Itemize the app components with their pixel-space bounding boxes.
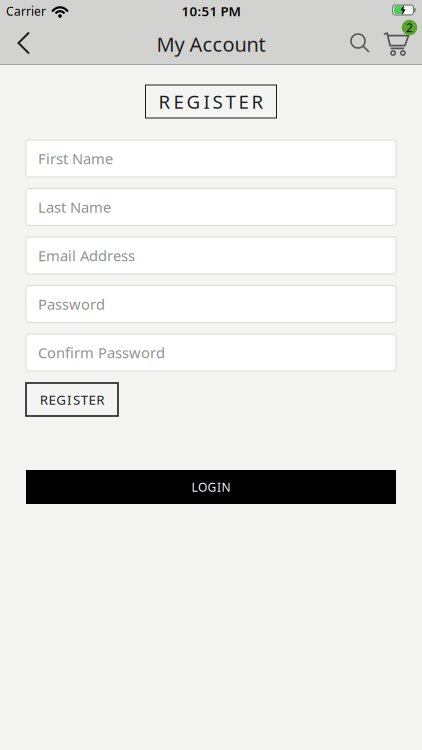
button[interactable]: REGISTER: [26, 383, 118, 416]
button[interactable]: Last Name: [26, 188, 396, 225]
staticText: Password: [38, 294, 105, 314]
staticText: Confirm Password: [38, 343, 165, 362]
staticText: LOGIN: [191, 479, 230, 495]
staticText: First Name: [38, 149, 113, 168]
button[interactable]: Cart, 2 items: [382, 18, 420, 60]
button[interactable]: Email Address: [26, 237, 396, 274]
button[interactable]: Password: [26, 285, 396, 322]
button[interactable]: Confirm Password: [26, 334, 396, 371]
staticText: My Account: [156, 31, 265, 57]
staticText: Last Name: [38, 197, 111, 217]
staticText: 10:51 PM: [181, 2, 240, 20]
button[interactable]: Back: [4, 24, 44, 61]
button[interactable]: Search: [343, 26, 377, 60]
button[interactable]: LOGIN: [26, 470, 396, 504]
staticText: 2: [406, 19, 413, 35]
staticText: REGISTER: [40, 391, 104, 408]
button[interactable]: First Name: [26, 140, 396, 177]
staticText: Carrier: [6, 3, 46, 19]
staticText: Email Address: [38, 246, 135, 265]
staticText: R E G I S T E R: [158, 89, 263, 114]
